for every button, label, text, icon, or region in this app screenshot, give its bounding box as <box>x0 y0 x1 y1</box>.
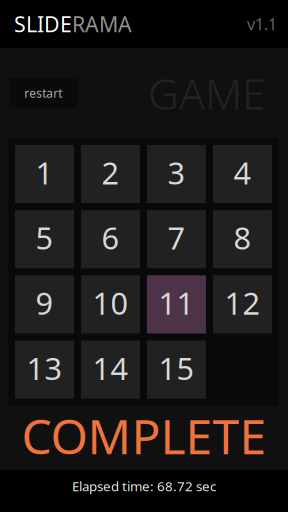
staticText: COMPLETE <box>21 404 266 467</box>
button[interactable]: 9 <box>15 275 74 333</box>
button[interactable]: 2 <box>81 145 140 203</box>
button[interactable]: 5 <box>15 210 74 268</box>
button[interactable]: 10 <box>81 275 140 333</box>
staticText: SLIDE <box>14 10 72 38</box>
staticText: 4 <box>233 152 251 193</box>
staticText: 14 <box>92 348 128 388</box>
button[interactable]: 7 <box>147 210 206 268</box>
staticText: Elapsed time: 68.72 sec <box>72 477 216 495</box>
staticText: v1.1 <box>247 13 277 35</box>
button[interactable]: 8 <box>213 210 272 268</box>
staticText: 9 <box>36 282 54 323</box>
button[interactable]: 13 <box>15 340 74 399</box>
staticText: GAME <box>148 65 266 121</box>
button[interactable]: 4 <box>213 145 272 203</box>
button[interactable]: 12 <box>213 275 272 333</box>
staticText: 11 <box>158 282 194 323</box>
button[interactable]: 3 <box>147 145 206 203</box>
staticText: 7 <box>167 217 185 258</box>
staticText: 1 <box>36 152 54 193</box>
button[interactable]: 6 <box>81 210 140 268</box>
button[interactable]: 14 <box>81 340 140 399</box>
button[interactable]: 15 <box>147 340 206 399</box>
staticText: 15 <box>158 348 194 388</box>
staticText: 2 <box>101 152 119 193</box>
staticText: RAMA <box>72 10 132 38</box>
staticText: 5 <box>36 217 54 258</box>
staticText: 12 <box>224 282 260 323</box>
button[interactable]: restart <box>9 78 77 108</box>
staticText: 10 <box>92 282 128 323</box>
staticText: 3 <box>167 152 185 193</box>
staticText: restart <box>24 85 62 101</box>
staticText: 6 <box>101 217 119 258</box>
button[interactable]: 1 <box>15 145 74 203</box>
staticText: 13 <box>27 348 63 388</box>
button[interactable]: 11 <box>147 275 206 333</box>
staticText: 8 <box>233 217 251 258</box>
